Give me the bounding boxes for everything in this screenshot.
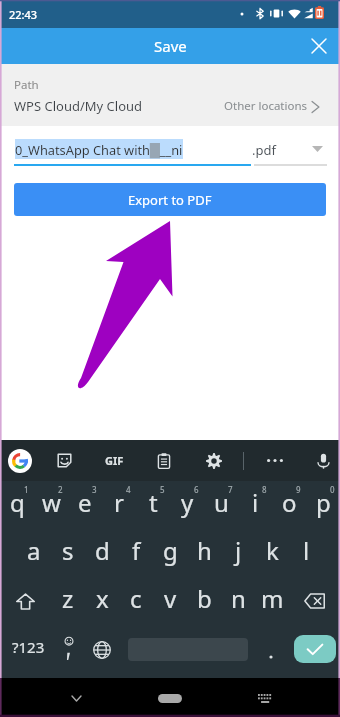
staticText: 0 — [330, 484, 335, 495]
button[interactable]: g — [153, 529, 187, 577]
staticText: GIF — [105, 453, 124, 468]
button[interactable]: p — [306, 481, 340, 529]
button[interactable]: More options — [253, 440, 297, 481]
button[interactable]: u — [204, 481, 238, 529]
staticText: 6 — [194, 484, 199, 495]
staticText: y — [181, 486, 194, 519]
button[interactable]: Stickers — [42, 440, 86, 481]
button[interactable]: b — [187, 577, 221, 625]
button[interactable]: a — [17, 529, 51, 577]
staticText: 2 — [58, 484, 63, 495]
staticText: ?123 — [12, 637, 45, 657]
staticText: d — [95, 534, 110, 567]
staticText: i — [252, 486, 259, 519]
button[interactable]: GIF — [92, 440, 136, 481]
button[interactable]: c — [119, 577, 153, 625]
staticText: 1 — [24, 484, 29, 495]
button[interactable]: l — [289, 529, 323, 577]
staticText: .pdf — [252, 141, 276, 159]
staticText: 3 — [92, 484, 97, 495]
staticText: 22:43 — [9, 7, 38, 22]
button[interactable]: Emoji — [58, 625, 96, 673]
button[interactable]: Export to PDF — [14, 183, 326, 216]
staticText: s — [62, 534, 74, 567]
staticText: p — [316, 486, 331, 519]
staticText: z — [62, 582, 74, 615]
button[interactable]: Path — [0, 64, 340, 126]
staticText: o — [282, 486, 297, 519]
staticText: b — [197, 582, 212, 615]
staticText: a — [27, 534, 41, 567]
staticText: v — [164, 582, 177, 615]
button[interactable]: y — [170, 481, 204, 529]
button[interactable]: o — [272, 481, 306, 529]
staticText: f — [132, 534, 141, 567]
staticText: Other locations — [224, 98, 308, 114]
staticText: x — [96, 582, 109, 615]
staticText: n — [231, 582, 246, 615]
button[interactable]: f — [119, 529, 153, 577]
staticText: w — [42, 486, 61, 519]
staticText: WPS Cloud/My Cloud — [14, 97, 143, 115]
staticText: 4 — [126, 484, 131, 495]
staticText: 0_WhatsApp Chat with█__ni — [15, 141, 183, 158]
button[interactable]: Google search — [0, 440, 42, 481]
button[interactable]: r — [102, 481, 136, 529]
staticText: e — [78, 486, 92, 519]
button[interactable]: m — [255, 577, 289, 625]
button[interactable]: h — [187, 529, 221, 577]
staticText: h — [197, 534, 212, 567]
staticText: m — [261, 582, 284, 615]
button[interactable]: Space — [128, 625, 248, 673]
staticText: g — [163, 534, 178, 567]
button[interactable]: Shift — [0, 577, 51, 625]
staticText: k — [266, 534, 279, 567]
staticText: q — [10, 486, 25, 519]
button[interactable]: e — [68, 481, 102, 529]
button[interactable]: w — [34, 481, 68, 529]
staticText: r — [114, 486, 124, 519]
button[interactable]: x — [85, 577, 119, 625]
button[interactable]: n — [221, 577, 255, 625]
button[interactable]: t — [136, 481, 170, 529]
button[interactable]: i — [238, 481, 272, 529]
button[interactable]: Clipboard — [142, 440, 186, 481]
staticText: t — [149, 486, 158, 519]
button[interactable]: d — [85, 529, 119, 577]
button[interactable]: Settings — [192, 440, 236, 481]
button[interactable]: Change language — [84, 625, 122, 673]
button[interactable]: Voice input — [301, 440, 340, 481]
staticText: 5 — [160, 484, 165, 495]
button[interactable]: Home — [146, 678, 194, 717]
staticText: Path — [14, 77, 39, 93]
staticText: c — [130, 582, 142, 615]
staticText: j — [235, 534, 242, 567]
staticText: u — [214, 486, 229, 519]
staticText: 7 — [228, 484, 233, 495]
button[interactable]: Close — [300, 28, 337, 64]
button[interactable]: File type — [305, 140, 329, 158]
button[interactable]: s — [51, 529, 85, 577]
button[interactable]: v — [153, 577, 187, 625]
button[interactable]: k — [255, 529, 289, 577]
button[interactable]: Backspace — [289, 577, 340, 625]
staticText: Save — [154, 36, 187, 56]
button[interactable]: Back — [52, 678, 100, 717]
button[interactable]: j — [221, 529, 255, 577]
button[interactable]: Period — [252, 625, 288, 673]
button[interactable]: q — [0, 481, 34, 529]
button[interactable]: ?123 — [0, 625, 58, 673]
button[interactable]: z — [51, 577, 85, 625]
button[interactable]: Enter — [288, 625, 338, 673]
button[interactable]: Hide keyboard — [240, 678, 288, 717]
staticText: 8 — [262, 484, 267, 495]
staticText: 9 — [296, 484, 301, 495]
staticText: l — [303, 534, 310, 567]
staticText: Export to PDF — [128, 191, 212, 209]
